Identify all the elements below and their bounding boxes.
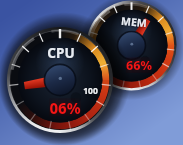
staticText: MEM (120, 14, 147, 30)
staticText: 100 (83, 85, 98, 97)
staticText: 06% (49, 98, 81, 116)
button[interactable]: CPU (36, 44, 86, 62)
staticText: CPU (47, 44, 75, 62)
staticText: 66% (126, 57, 152, 73)
button[interactable]: MEM (108, 12, 160, 32)
